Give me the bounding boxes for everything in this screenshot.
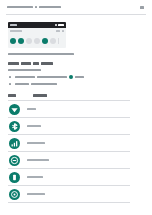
button[interactable]: WIFI bbox=[0, 101, 152, 117]
button[interactable]: FLASH bbox=[0, 169, 152, 185]
button[interactable] bbox=[8, 62, 53, 65]
button[interactable]: DATA bbox=[0, 135, 152, 151]
other: ROTATE bbox=[9, 189, 20, 200]
button[interactable]: ROTATE bbox=[0, 186, 152, 202]
button[interactable] bbox=[8, 22, 66, 48]
button[interactable]: Account bbox=[139, 4, 145, 10]
other: DATA bbox=[9, 138, 20, 149]
other: FLASH bbox=[9, 172, 20, 183]
other: BLUETOOTH bbox=[9, 121, 20, 132]
button[interactable]: DND bbox=[0, 152, 152, 168]
other: WIFI bbox=[9, 104, 20, 115]
button[interactable]: BLUETOOTH bbox=[0, 118, 152, 134]
other: DND bbox=[9, 155, 20, 166]
button[interactable] bbox=[7, 6, 61, 8]
